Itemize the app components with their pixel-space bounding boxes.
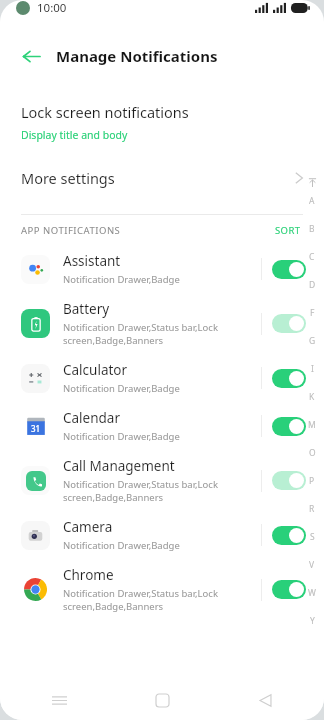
button[interactable]: Back: [16, 41, 46, 71]
staticText: I: [311, 363, 314, 375]
staticText: APP NOTIFICATIONS: [21, 224, 121, 237]
staticText: D: [309, 279, 316, 291]
button[interactable]: SORT: [273, 220, 303, 241]
staticText: F: [310, 307, 315, 319]
staticText: More settings: [21, 168, 115, 188]
staticText: 10:00: [37, 0, 67, 16]
staticText: S: [310, 531, 315, 543]
staticText: G: [309, 335, 316, 347]
staticText: Lock screen notifications: [21, 102, 189, 122]
staticText: Notification Drawer,Badge: [63, 382, 180, 395]
staticText: Camera: [63, 518, 113, 536]
staticText: Notification Drawer,Badge: [63, 430, 180, 443]
staticText: Y: [310, 615, 315, 627]
staticText: Notification Drawer,Badge: [63, 273, 180, 286]
button[interactable]: Toggle notifications: [272, 314, 306, 333]
button[interactable]: Lock screen notifications: [0, 100, 324, 144]
button[interactable]: Recents: [44, 685, 74, 715]
staticText: O: [309, 447, 316, 459]
button[interactable]: Chrome: [0, 559, 324, 620]
staticText: Manage Notifications: [56, 46, 218, 66]
staticText: 31: [31, 423, 41, 434]
staticText: B: [309, 223, 315, 235]
button[interactable]: Back: [250, 685, 280, 715]
staticText: M: [308, 419, 316, 431]
button[interactable]: Home: [147, 685, 177, 715]
staticText: Calculator: [63, 361, 128, 379]
staticText: V: [309, 559, 315, 571]
button[interactable]: Toggle notifications: [272, 526, 306, 545]
button[interactable]: 31: [0, 402, 324, 450]
staticText: C: [309, 251, 315, 263]
staticText: R: [309, 503, 315, 515]
button[interactable]: Assistant: [0, 245, 324, 293]
staticText: Chrome: [63, 566, 114, 584]
staticText: SORT: [275, 224, 301, 237]
button[interactable]: Battery: [0, 293, 324, 354]
button[interactable]: Toggle notifications: [272, 260, 306, 279]
button[interactable]: Calculator: [0, 354, 324, 402]
button[interactable]: Toggle notifications: [272, 369, 306, 388]
button[interactable]: Alphabet index: [304, 178, 320, 635]
button[interactable]: Call Management: [0, 450, 324, 511]
button[interactable]: Toggle notifications: [272, 471, 306, 490]
staticText: W: [308, 587, 316, 599]
button[interactable]: Toggle notifications: [272, 580, 306, 599]
staticText: Calendar: [63, 409, 120, 427]
staticText: Notification Drawer,Status bar,Lock scre…: [63, 321, 253, 347]
staticText: Assistant: [63, 252, 121, 270]
staticText: A: [309, 195, 315, 207]
staticText: Battery: [63, 300, 110, 318]
staticText: Call Management: [63, 457, 175, 475]
staticText: P: [309, 475, 315, 487]
button[interactable]: More settings: [0, 166, 324, 190]
staticText: K: [309, 391, 315, 403]
staticText: Notification Drawer,Badge: [63, 539, 180, 552]
button[interactable]: Toggle notifications: [272, 417, 306, 436]
button[interactable]: Camera: [0, 511, 324, 559]
staticText: Display title and body: [21, 128, 128, 142]
staticText: Notification Drawer,Status bar,Lock scre…: [63, 587, 253, 613]
staticText: Notification Drawer,Status bar,Lock scre…: [63, 478, 253, 504]
